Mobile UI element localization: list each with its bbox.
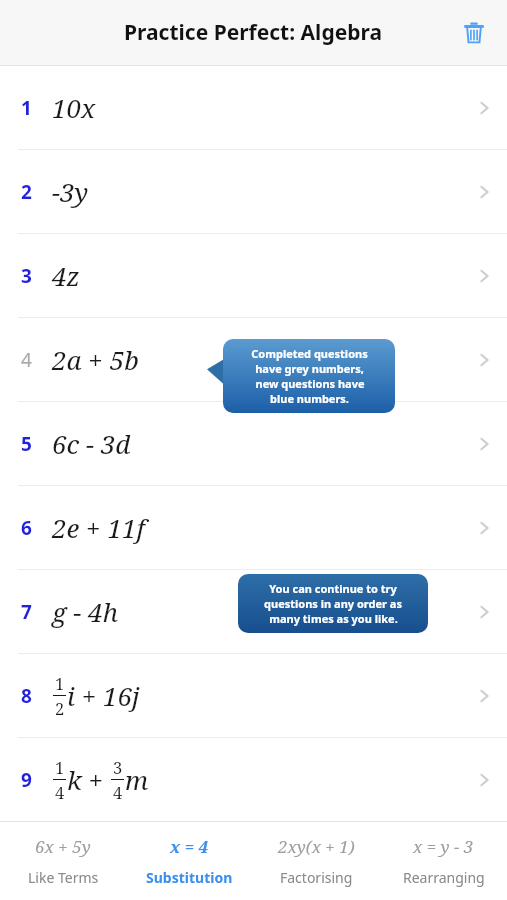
staticText: g − 4h [52, 594, 119, 629]
button[interactable]: Delete progress [455, 14, 493, 52]
staticText: blue numbers. [270, 391, 349, 406]
staticText: 1 [55, 756, 65, 778]
staticText: 6 [21, 515, 32, 541]
staticText: 1 [55, 672, 65, 694]
staticText: Completed questions [251, 346, 368, 361]
staticText: 2xy(x + 1) [278, 835, 355, 858]
staticText: 4 [113, 781, 123, 803]
staticText: 9 [21, 767, 32, 793]
staticText: 4 [55, 781, 65, 803]
button[interactable]: 6x + 5y [0, 822, 126, 900]
staticText: x = 4 [170, 835, 209, 858]
staticText: have grey numbers, [255, 361, 364, 376]
staticText: Practice Perfect: Algebra [124, 18, 383, 47]
staticText: Substitution [146, 868, 233, 887]
button[interactable]: 2xy(x + 1) [253, 822, 380, 900]
staticText: Factorising [280, 868, 353, 887]
button[interactable]: 8 [0, 654, 507, 737]
staticText: 2e + 11f [52, 510, 145, 545]
staticText: 4 [21, 347, 32, 373]
button[interactable]: 6 [0, 486, 507, 569]
staticText: 4z [52, 258, 80, 293]
staticText: 2a + 5b [52, 342, 139, 377]
staticText: 2 [55, 697, 65, 719]
staticText: i + 16j [67, 678, 140, 713]
staticText: m [125, 762, 149, 797]
staticText: 8 [21, 683, 32, 709]
button[interactable]: 3 [0, 234, 507, 317]
button[interactable]: 2 [0, 150, 507, 233]
button[interactable]: 7 [0, 570, 507, 653]
staticText: 10x [52, 90, 96, 125]
staticText: You can continue to try [269, 581, 397, 596]
staticText: many times as you like. [269, 611, 398, 626]
staticText: 6x + 5y [35, 835, 91, 858]
staticText: Like Terms [28, 868, 99, 887]
button[interactable]: 4 [0, 318, 507, 401]
staticText: 3 [113, 756, 123, 778]
staticText: −3y [52, 174, 89, 209]
staticText: Rearranging [403, 868, 485, 887]
button[interactable]: 5 [0, 402, 507, 485]
button[interactable]: 9 [0, 738, 507, 821]
staticText: 7 [21, 599, 32, 625]
staticText: 6c − 3d [52, 426, 131, 461]
staticText: questions in any order as [264, 596, 402, 611]
staticText: 1 [21, 95, 32, 121]
staticText: new questions have [255, 376, 365, 391]
staticText: 3 [21, 263, 32, 289]
staticText: x = y − 3 [413, 835, 474, 858]
staticText: 2 [21, 179, 32, 205]
staticText: 5 [21, 431, 32, 457]
staticText: k + [67, 762, 110, 797]
button[interactable]: 1 [0, 66, 507, 149]
button[interactable]: x = 4 [126, 822, 253, 900]
button[interactable]: x = y − 3 [380, 822, 507, 900]
